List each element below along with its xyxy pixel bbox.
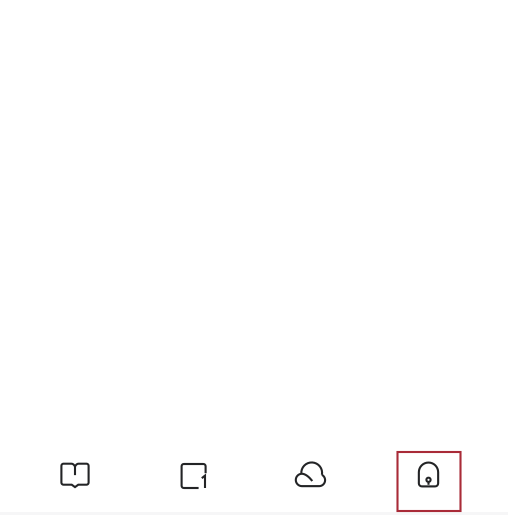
button[interactable]: Cloud [252,447,370,503]
button[interactable]: Tabs [134,447,252,503]
button[interactable]: Bookmarks [16,447,134,503]
button[interactable]: Private [370,447,488,503]
